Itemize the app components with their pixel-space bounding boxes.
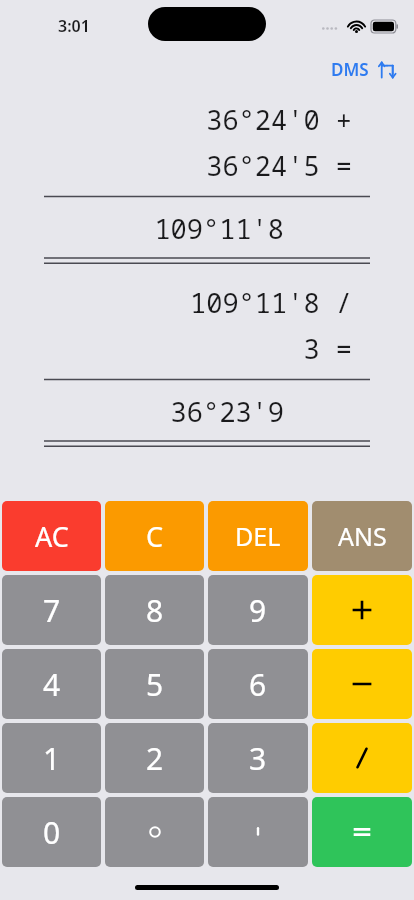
button[interactable] [312, 723, 412, 793]
button[interactable]: 1 [2, 723, 101, 793]
staticText: 36°24'0 + [0, 101, 352, 138]
staticText: 1 [43, 738, 61, 779]
button[interactable]: 6 [208, 649, 308, 719]
staticText: 5 [146, 664, 164, 705]
staticText: 7 [43, 590, 61, 631]
staticText: 109°11'8 / [0, 284, 352, 321]
staticText: AC [35, 518, 69, 555]
button[interactable] [312, 649, 412, 719]
button[interactable]: 0 [2, 797, 101, 867]
button[interactable]: 9 [208, 575, 308, 645]
button[interactable]: 5 [105, 649, 204, 719]
staticText: 3:01 [58, 15, 90, 37]
staticText: C [146, 518, 164, 555]
staticText: 3 [249, 738, 267, 779]
button[interactable]: ANS [312, 501, 412, 571]
button[interactable]: DEL [208, 501, 308, 571]
button[interactable] [105, 797, 204, 867]
button[interactable] [312, 575, 412, 645]
staticText: 0 [43, 812, 61, 853]
staticText: 9 [249, 590, 267, 631]
button[interactable]: 8 [105, 575, 204, 645]
button[interactable]: AC [2, 501, 101, 571]
staticText: 8 [146, 590, 164, 631]
button[interactable]: 7 [2, 575, 101, 645]
other: Toggle DMS conversion [376, 59, 398, 81]
button[interactable]: 2 [105, 723, 204, 793]
button[interactable] [208, 797, 308, 867]
button[interactable] [312, 797, 412, 867]
staticText: 6 [249, 664, 267, 705]
staticText: 3 = [0, 330, 352, 367]
staticText: ANS [338, 519, 387, 553]
staticText: 2 [146, 738, 164, 779]
button[interactable]: DMS [315, 52, 414, 87]
staticText: DEL [235, 519, 281, 553]
staticText: 36°24'5 = [0, 147, 352, 184]
button[interactable]: 3 [208, 723, 308, 793]
button[interactable]: C [105, 501, 204, 571]
staticText: DMS [331, 58, 369, 81]
button[interactable]: 4 [2, 649, 101, 719]
staticText: 36°23'9 [0, 393, 284, 430]
staticText: 4 [43, 664, 61, 705]
staticText: 109°11'8 [0, 210, 284, 247]
